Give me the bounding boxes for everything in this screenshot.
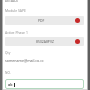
staticText: somename@mail.co.cc [5,58,44,63]
staticText: ab [8,82,13,87]
staticText: 8502A8PVZ [36,39,54,44]
staticText: Active Phase 1 [5,30,28,35]
staticText: Module SAPE [5,8,26,13]
button[interactable]: PDF [5,16,84,25]
staticText: PDF [38,18,45,23]
button[interactable]: ab [5,79,84,89]
staticText: NO. [5,71,11,75]
other: Required [75,39,80,44]
other: Required [75,18,80,23]
staticText: DETAILS [5,0,18,3]
staticText: Qty [5,51,11,55]
button[interactable]: 8502A8PVZ [5,37,84,46]
